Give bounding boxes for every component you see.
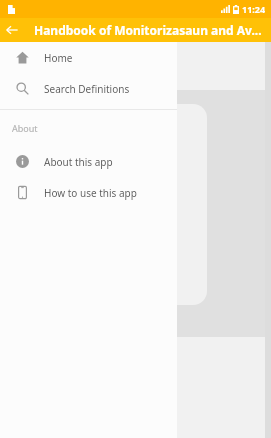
staticText: 11:24 bbox=[242, 3, 266, 15]
button[interactable]: Search Definitions bbox=[0, 73, 177, 104]
button[interactable]: Back bbox=[0, 18, 24, 42]
staticText: Home bbox=[44, 51, 73, 65]
staticText: How to use this app bbox=[44, 186, 137, 200]
button[interactable]: How to use this app bbox=[0, 177, 177, 208]
staticText: Handbook of Monitorizasaun and Av... bbox=[34, 22, 271, 38]
staticText: Ministério bbox=[30, 193, 97, 211]
button[interactable]: Home bbox=[0, 42, 177, 73]
staticText: Search Definitions bbox=[44, 82, 130, 96]
staticText: About bbox=[12, 122, 38, 134]
button[interactable]: About this app bbox=[0, 146, 177, 177]
staticText: About this app bbox=[44, 155, 113, 169]
